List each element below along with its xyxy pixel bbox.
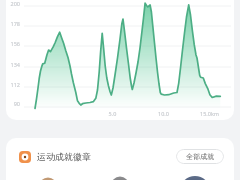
staticText: 200 — [3, 0, 20, 7]
staticText: 90 — [3, 100, 20, 107]
staticText: 178 — [3, 20, 20, 27]
staticText: 134 — [3, 61, 20, 68]
button[interactable]: 全部成就 — [176, 149, 224, 164]
staticText: 112 — [3, 81, 20, 88]
staticText: 全部成就 — [186, 152, 214, 161]
staticText: 15.0km — [200, 110, 230, 117]
staticText: 10.0 — [151, 110, 176, 117]
staticText: 运动成就徽章 — [37, 151, 91, 162]
button[interactable]: 运动成就徽章 — [6, 138, 234, 175]
staticText: 156 — [3, 40, 20, 47]
other: Achievement badges — [0, 0, 240, 180]
staticText: 5.0 — [100, 110, 125, 117]
